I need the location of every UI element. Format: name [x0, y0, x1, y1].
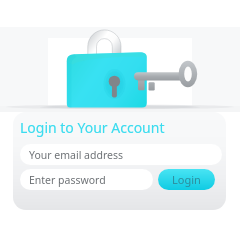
- button[interactable]: Your email address: [20, 144, 222, 165]
- staticText: Login: [172, 172, 201, 187]
- staticText: Your email address: [29, 148, 124, 162]
- staticText: Enter password: [29, 173, 106, 187]
- button[interactable]: Login: [158, 169, 215, 190]
- staticText: Login to Your Account: [20, 118, 165, 137]
- button[interactable]: Enter password: [20, 169, 153, 190]
